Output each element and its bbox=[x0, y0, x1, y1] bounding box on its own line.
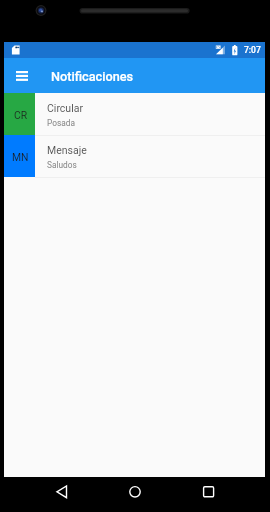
staticText: CR bbox=[14, 109, 28, 121]
button[interactable]: Open navigation menu bbox=[8, 58, 36, 93]
staticText: Saludos bbox=[47, 160, 77, 170]
staticText: MN bbox=[12, 151, 29, 163]
staticText: 7:07 bbox=[244, 45, 261, 55]
staticText: Circular bbox=[47, 102, 83, 114]
button[interactable]: Back bbox=[47, 477, 77, 512]
staticText: Notificaciones bbox=[51, 69, 134, 84]
button[interactable]: Recent apps bbox=[193, 477, 223, 512]
staticText: Mensaje bbox=[47, 144, 87, 156]
button[interactable]: Home bbox=[120, 477, 150, 512]
staticText: Posada bbox=[47, 118, 75, 128]
button[interactable]: MN bbox=[4, 135, 265, 177]
button[interactable]: CR bbox=[4, 93, 265, 135]
